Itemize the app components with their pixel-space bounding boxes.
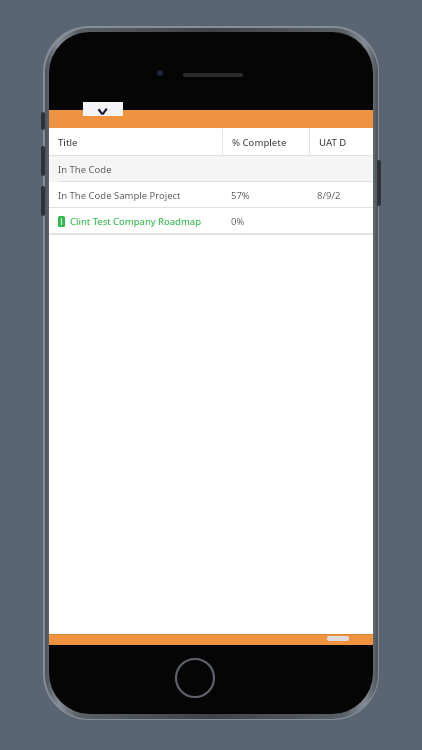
- button[interactable]: UAT D: [310, 128, 372, 156]
- button[interactable]: In The Code Sample Project: [49, 182, 373, 208]
- staticText: In The Code Sample Project: [58, 189, 181, 202]
- button[interactable]: Title: [49, 128, 222, 156]
- button[interactable]: In The Code: [49, 156, 373, 182]
- button[interactable]: % Complete: [223, 128, 309, 156]
- button[interactable]: More: [327, 636, 349, 641]
- staticText: Title: [58, 136, 78, 149]
- staticText: % Complete: [232, 136, 287, 149]
- button[interactable]: Search: [83, 102, 123, 116]
- staticText: In The Code: [58, 163, 112, 176]
- staticText: 0%: [231, 215, 245, 228]
- staticText: UAT D: [319, 136, 347, 149]
- staticText: 8/9/2: [317, 189, 341, 202]
- button[interactable]: Clint Test Company Roadmap: [49, 208, 373, 234]
- staticText: Clint Test Company Roadmap: [70, 215, 201, 228]
- button[interactable]: Home: [173, 656, 217, 700]
- staticText: 57%: [231, 189, 250, 202]
